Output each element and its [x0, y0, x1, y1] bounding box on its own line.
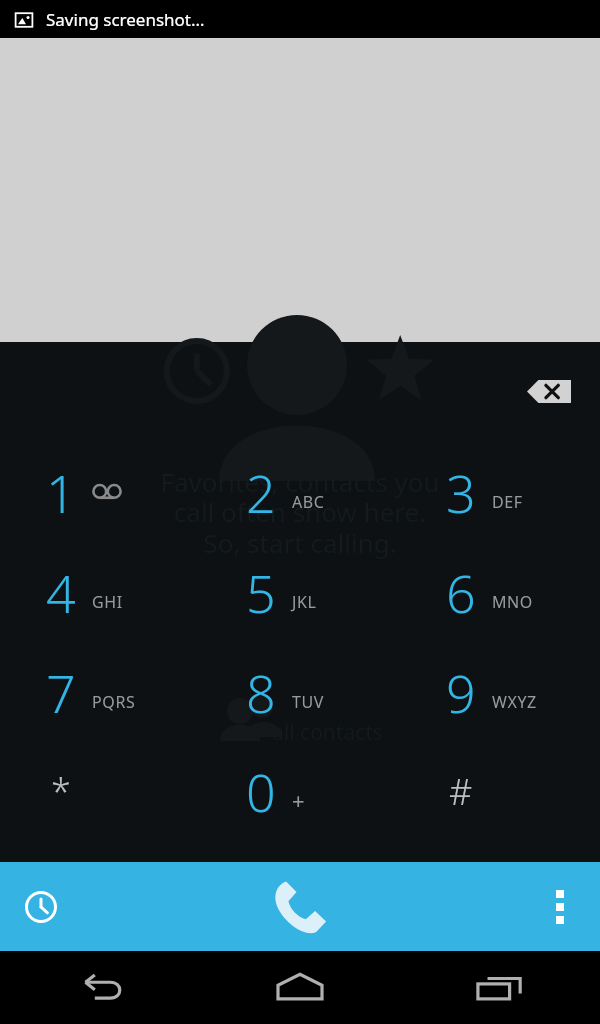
staticText: 6	[446, 557, 476, 628]
staticText: +	[292, 785, 305, 815]
button[interactable]: 9	[400, 642, 600, 742]
button[interactable]: 3	[400, 442, 600, 542]
staticText: 5	[246, 557, 276, 628]
staticText: 7	[46, 657, 76, 728]
button[interactable]: 8	[200, 642, 400, 742]
button[interactable]: 1	[0, 442, 200, 542]
button[interactable]: More options	[534, 881, 586, 933]
button[interactable]: Backspace	[518, 370, 580, 412]
staticText: Saving screenshot…	[46, 8, 205, 31]
staticText: PQRS	[92, 691, 136, 713]
staticText: 8	[246, 657, 276, 728]
button[interactable]: 5	[200, 542, 400, 642]
staticText: #	[449, 767, 473, 816]
button[interactable]: 2	[200, 442, 400, 542]
button[interactable]: 4	[0, 542, 200, 642]
button[interactable]: Back	[0, 951, 200, 1024]
button[interactable]: Recent apps	[400, 951, 600, 1024]
staticText: 9	[446, 657, 476, 728]
button[interactable]: 6	[400, 542, 600, 642]
staticText: 2	[246, 457, 276, 528]
staticText: GHI	[92, 591, 123, 613]
staticText: ABC	[292, 491, 325, 513]
staticText: Favorites, contacts you call often show …	[160, 464, 440, 561]
staticText: MNO	[492, 591, 533, 613]
staticText: TUV	[292, 691, 324, 713]
staticText: DEF	[492, 491, 523, 513]
button[interactable]: 7	[0, 642, 200, 742]
staticText: JKL	[292, 591, 317, 613]
staticText: 3	[446, 457, 476, 528]
staticText: WXYZ	[492, 691, 537, 713]
staticText: *	[51, 767, 71, 816]
button[interactable]: 0	[200, 742, 400, 840]
button[interactable]: Call history	[12, 878, 70, 936]
staticText: 4	[46, 557, 76, 628]
button[interactable]: *	[0, 742, 200, 840]
button[interactable]: #	[400, 742, 600, 840]
staticText: 0	[246, 756, 276, 827]
button[interactable]: Dial	[262, 869, 338, 945]
button[interactable]: Home	[200, 951, 400, 1024]
staticText: 1	[46, 457, 76, 528]
